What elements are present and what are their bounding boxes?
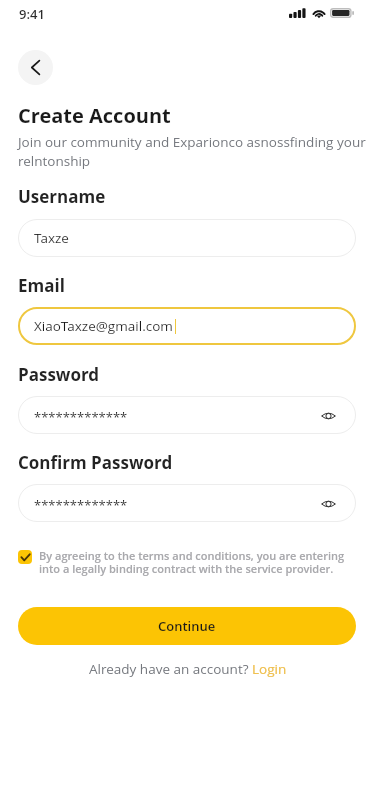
staticText: Username xyxy=(18,185,106,208)
staticText: Join our community and Exparionco asnoss… xyxy=(18,133,366,170)
button[interactable]: Show password xyxy=(317,406,339,426)
staticText: ************* xyxy=(34,408,128,426)
button[interactable]: Agree to terms and conditions xyxy=(18,550,32,564)
staticText: Continue xyxy=(158,617,216,635)
staticText: 9:41 xyxy=(19,5,45,23)
button[interactable]: Continue xyxy=(18,607,356,645)
button[interactable]: Show password xyxy=(317,494,339,514)
staticText: XiaoTaxze@gmail.com xyxy=(34,317,173,335)
staticText: Create Account xyxy=(18,102,171,129)
staticText: Email xyxy=(18,274,65,297)
staticText: Already have an account? xyxy=(89,660,252,678)
button[interactable]: Back xyxy=(18,50,53,85)
staticText: Login xyxy=(252,660,287,678)
staticText: By agreeing to the terms and conditions,… xyxy=(39,548,353,576)
button[interactable]: Taxze xyxy=(18,219,356,257)
staticText: Password xyxy=(18,363,100,386)
button[interactable]: XiaoTaxze@gmail.com xyxy=(18,307,356,345)
staticText: ************* xyxy=(34,496,128,514)
button[interactable]: ************* xyxy=(18,484,356,522)
button[interactable]: ************* xyxy=(18,396,356,434)
staticText: Confirm Password xyxy=(18,451,173,474)
button[interactable]: Login xyxy=(252,660,287,678)
staticText: Taxze xyxy=(34,229,69,247)
